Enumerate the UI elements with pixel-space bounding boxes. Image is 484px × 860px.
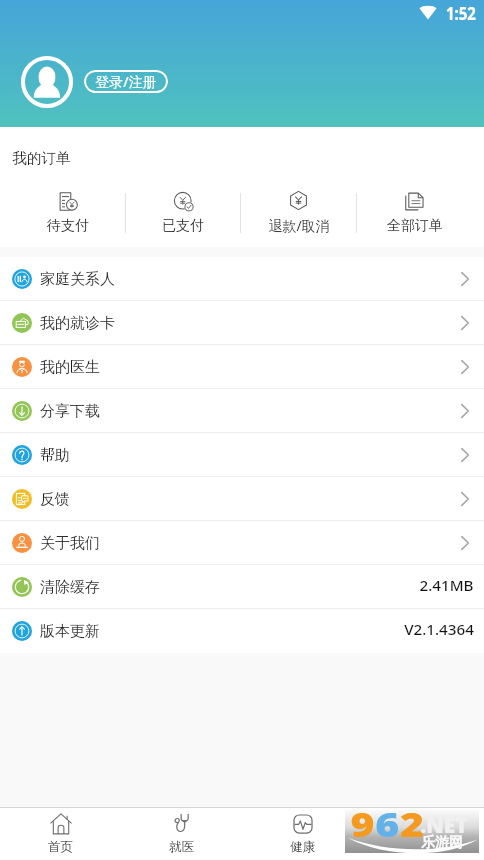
staticText: 就医 [169, 839, 194, 855]
staticText: 我的就诊卡 [40, 314, 115, 333]
staticText: 反馈 [40, 490, 70, 509]
staticText: 我的订单 [12, 149, 71, 167]
staticText: 1:52 [446, 1, 476, 25]
button[interactable]: 待支付 [11, 191, 125, 235]
staticText: 2.41MB [419, 575, 474, 596]
staticText: 首页 [48, 839, 73, 855]
button[interactable]: 健康 [242, 808, 363, 860]
button[interactable]: 我的医生 [0, 345, 484, 389]
button[interactable]: 已支付 [126, 191, 240, 235]
staticText: 健康 [290, 839, 315, 855]
staticText: 关于我们 [40, 534, 100, 553]
staticText: 我的 [411, 839, 436, 855]
button[interactable]: 就医 [121, 808, 242, 860]
staticText: 分享下载 [40, 402, 100, 421]
staticText: 清除缓存 [40, 578, 100, 597]
staticText: 登录/注册 [95, 72, 157, 91]
button[interactable]: 首页 [0, 808, 121, 860]
button[interactable]: 全部订单 [357, 191, 472, 235]
button[interactable]: Profile avatar [20, 55, 74, 109]
button[interactable]: 退款/取消 [241, 191, 356, 235]
button[interactable]: 帮助 [0, 433, 484, 477]
button[interactable]: 分享下载 [0, 389, 484, 433]
staticText: 待支付 [47, 217, 89, 235]
button[interactable]: 我的 [363, 808, 484, 860]
staticText: 家庭关系人 [40, 270, 115, 289]
button[interactable]: 版本更新 [0, 609, 484, 653]
staticText: 退款/取消 [268, 216, 330, 235]
button[interactable]: 关于我们 [0, 521, 484, 565]
staticText: 6 [375, 802, 400, 845]
staticText: 全部订单 [387, 217, 443, 235]
staticText: 已支付 [162, 217, 204, 235]
staticText: 帮助 [40, 446, 70, 465]
button[interactable]: 登录/注册 [84, 70, 168, 93]
button[interactable]: 家庭关系人 [0, 257, 484, 301]
staticText: 我的医生 [40, 358, 100, 377]
button[interactable]: 我的就诊卡 [0, 301, 484, 345]
other: 962.NET watermark [345, 810, 479, 853]
staticText: 9 [350, 802, 375, 845]
staticText: 2 [400, 802, 424, 845]
staticText: 乐游网 [421, 834, 463, 852]
button[interactable]: 反馈 [0, 477, 484, 521]
button[interactable]: 清除缓存 [0, 565, 484, 609]
staticText: V2.1.4364 [404, 619, 474, 640]
staticText: .NET [420, 811, 468, 840]
staticText: 版本更新 [40, 622, 100, 641]
